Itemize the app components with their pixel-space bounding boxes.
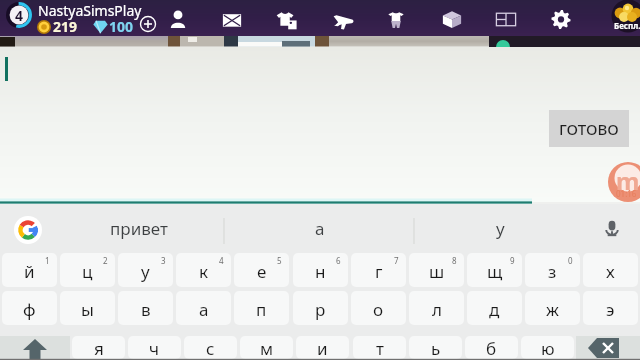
staticText: а	[315, 217, 325, 240]
staticText: ГОТОВО	[559, 119, 619, 139]
staticText: т	[376, 337, 384, 359]
staticText: 4	[15, 6, 24, 25]
staticText: у	[496, 217, 505, 240]
staticText: 1	[45, 255, 50, 266]
staticText: з	[548, 260, 557, 283]
button[interactable]: Google search	[14, 216, 42, 244]
staticText: 219	[53, 17, 78, 36]
staticText: а	[199, 298, 209, 321]
staticText: н	[315, 260, 326, 283]
button[interactable]: Build	[440, 7, 464, 31]
button[interactable]: о	[351, 291, 406, 325]
button[interactable]: п	[234, 291, 289, 325]
staticText: 9	[510, 255, 515, 266]
button[interactable]: м	[240, 336, 293, 359]
button[interactable]: з	[525, 253, 580, 287]
button[interactable]: ы	[60, 291, 115, 325]
button[interactable]: й	[2, 253, 57, 287]
staticText: э	[606, 298, 615, 321]
staticText: г	[375, 260, 383, 283]
button[interactable]: Profile level	[6, 2, 32, 28]
staticText: ж	[546, 298, 559, 321]
staticText: й	[24, 260, 35, 283]
staticText: 0	[568, 255, 573, 266]
button[interactable]: к	[176, 253, 231, 287]
staticText: ц	[82, 260, 93, 283]
staticText: м	[260, 337, 274, 359]
staticText: е	[257, 260, 267, 283]
staticText: к	[199, 260, 209, 283]
staticText: и	[317, 337, 328, 359]
button[interactable]: ш	[409, 253, 464, 287]
button[interactable]: г	[351, 253, 406, 287]
button[interactable]: Backspace	[576, 336, 640, 359]
staticText: ы	[81, 298, 94, 321]
button[interactable]: Shift	[0, 336, 70, 359]
button[interactable]: Settings	[549, 7, 573, 31]
staticText: 3	[161, 255, 166, 266]
staticText: д	[489, 298, 500, 321]
staticText: б	[486, 337, 497, 359]
button[interactable]: а	[176, 291, 231, 325]
staticText: 01:16	[616, 188, 637, 199]
staticText: привет	[110, 217, 168, 240]
button[interactable]: р	[293, 291, 348, 325]
button[interactable]: 100	[93, 17, 134, 36]
button[interactable]: с	[184, 336, 237, 359]
staticText: х	[606, 260, 615, 283]
staticText: с	[206, 337, 215, 359]
button[interactable]: Friends	[166, 7, 190, 31]
staticText: 100	[109, 17, 134, 36]
button[interactable]: т	[353, 336, 406, 359]
button[interactable]: Voice input	[600, 216, 624, 240]
button[interactable]: Layout	[494, 7, 518, 31]
button[interactable]: л	[409, 291, 464, 325]
button[interactable]: ь	[409, 336, 462, 359]
staticText: 2	[103, 255, 108, 266]
staticText: 5	[277, 255, 282, 266]
staticText: в	[141, 298, 151, 321]
staticText: щ	[487, 260, 503, 283]
button[interactable]: х	[583, 253, 638, 287]
staticText: 6	[336, 255, 341, 266]
button[interactable]: н	[293, 253, 348, 287]
button[interactable]: б	[465, 336, 518, 359]
button[interactable]: ю	[521, 336, 574, 359]
button[interactable]: Shop	[275, 7, 299, 31]
button[interactable]: я	[72, 336, 125, 359]
button[interactable]: в	[118, 291, 173, 325]
staticText: ч	[149, 337, 160, 359]
staticText: Беспл.	[614, 20, 640, 31]
staticText: ш	[429, 260, 445, 283]
button[interactable]: Messages	[220, 7, 244, 31]
button[interactable]: ф	[2, 291, 57, 325]
staticText: у	[141, 260, 150, 283]
staticText: ф	[23, 298, 36, 321]
button[interactable]: а	[225, 204, 414, 252]
button[interactable]: д	[467, 291, 522, 325]
staticText: ю	[541, 337, 555, 359]
staticText: р	[315, 298, 326, 321]
button[interactable]: ц	[60, 253, 115, 287]
button[interactable]: щ	[467, 253, 522, 287]
button[interactable]: Wardrobe	[384, 7, 408, 31]
button[interactable]: и	[296, 336, 349, 359]
button[interactable]: Travel	[330, 7, 354, 31]
staticText: 8	[452, 255, 457, 266]
staticText: 7	[394, 255, 399, 266]
staticText: NastyaSimsPlay	[38, 1, 142, 20]
button[interactable]: ж	[525, 291, 580, 325]
staticText: 4	[219, 255, 224, 266]
button[interactable]: 219	[37, 17, 78, 36]
button[interactable]: э	[583, 291, 638, 325]
button[interactable]: привет	[54, 204, 224, 252]
staticText: m	[616, 164, 640, 197]
button[interactable]: ч	[128, 336, 181, 359]
button[interactable]: у	[118, 253, 173, 287]
button[interactable]: ГОТОВО	[549, 110, 629, 147]
button[interactable]: Free coins	[606, 0, 640, 36]
staticText: п	[256, 298, 267, 321]
button[interactable]: Add currency	[140, 16, 156, 32]
button[interactable]: у	[415, 204, 585, 252]
button[interactable]: е	[234, 253, 289, 287]
